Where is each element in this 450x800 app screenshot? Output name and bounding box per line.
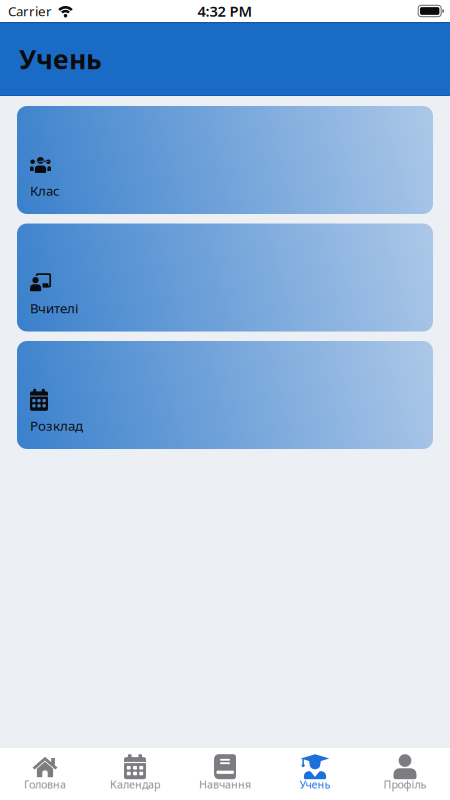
- staticText: Carrier: [8, 2, 52, 20]
- button[interactable]: Головна: [0, 748, 90, 800]
- staticText: Навчання: [199, 777, 251, 791]
- staticText: Учень: [19, 41, 102, 77]
- staticText: Головна: [24, 777, 66, 791]
- staticText: Календар: [110, 777, 160, 791]
- staticText: Вчителі: [30, 299, 78, 317]
- button[interactable]: Учень: [270, 748, 360, 800]
- button[interactable]: Навчання: [180, 748, 270, 800]
- button[interactable]: Профіль: [360, 748, 450, 800]
- staticText: Профіль: [383, 777, 426, 791]
- staticText: Учень: [299, 777, 330, 791]
- button[interactable]: Вчителі: [17, 223, 433, 331]
- button[interactable]: Календар: [90, 748, 180, 800]
- staticText: 4:32 PM: [197, 1, 252, 21]
- staticText: Розклад: [30, 417, 83, 434]
- button[interactable]: Розклад: [17, 341, 433, 449]
- staticText: Клас: [30, 182, 60, 199]
- button[interactable]: Клас: [17, 106, 433, 214]
